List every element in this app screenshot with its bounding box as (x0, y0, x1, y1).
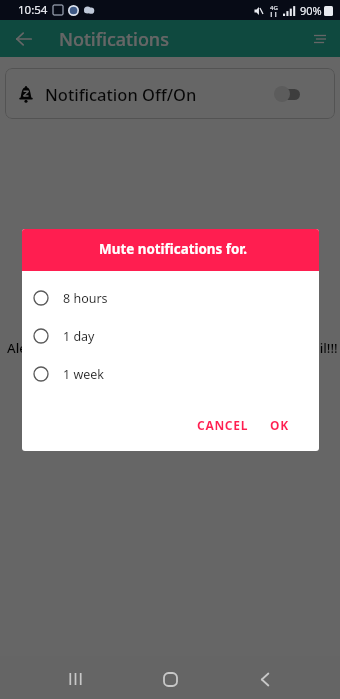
staticText: 90% (300, 3, 322, 18)
button[interactable]: Notification Off/On (5, 68, 335, 119)
staticText: Mute notifications for. (99, 240, 247, 258)
staticText: OK (270, 417, 289, 433)
staticText: 4G (270, 4, 278, 12)
button[interactable]: Notification toggle (274, 86, 300, 102)
button[interactable]: Menu (306, 25, 334, 53)
staticText: 1 day (63, 328, 95, 345)
button[interactable]: 1 week (22, 355, 319, 393)
button[interactable]: Home (154, 663, 186, 695)
button[interactable]: Back (249, 663, 281, 695)
staticText: 10:54 (18, 2, 48, 18)
staticText: 1 week (63, 366, 105, 383)
button[interactable]: Recents (59, 663, 91, 695)
button[interactable]: 8 hours (22, 279, 319, 317)
button[interactable]: CANCEL (189, 411, 257, 439)
staticText: 8 hours (63, 290, 108, 307)
button[interactable]: 1 day (22, 317, 319, 355)
staticText: Notifications (59, 27, 169, 52)
staticText: CANCEL (197, 417, 249, 433)
button[interactable]: OK (262, 411, 297, 439)
staticText: Alert Message: Notification Setting is O… (7, 339, 338, 357)
button[interactable]: Back (7, 22, 40, 55)
staticText: Notification Off/On (45, 83, 197, 105)
